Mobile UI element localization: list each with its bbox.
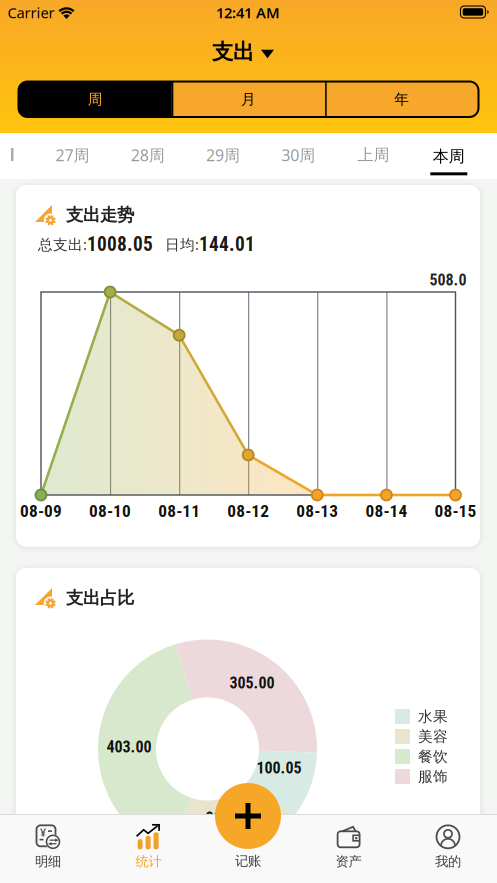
staticText: 29周: [206, 144, 240, 166]
button[interactable]: 资产: [336, 824, 362, 870]
staticText: 美容: [418, 727, 448, 745]
staticText: 305.00: [229, 674, 274, 692]
button[interactable]: 统计: [135, 824, 163, 870]
staticText: 餐饮: [418, 747, 448, 765]
staticText: 支出: [212, 39, 254, 65]
staticText: 服饰: [418, 767, 448, 785]
button[interactable]: 月: [172, 81, 325, 117]
button[interactable]: 记账: [235, 853, 261, 869]
staticText: 200.00: [205, 809, 250, 827]
staticText: 08-15: [434, 501, 476, 521]
staticText: 08-12: [227, 501, 269, 521]
staticText: 1008.05: [87, 233, 153, 256]
button[interactable]: 30周: [281, 144, 315, 166]
staticText: 28周: [131, 144, 165, 166]
staticText: 100.05: [256, 759, 301, 777]
staticText: 08-13: [296, 501, 338, 521]
staticText: 08-09: [20, 501, 62, 521]
staticText: 08-10: [89, 501, 131, 521]
staticText: 上周: [358, 145, 390, 165]
button[interactable]: ¥: [35, 824, 61, 870]
staticText: 我的: [435, 853, 461, 870]
staticText: Carrier: [7, 3, 54, 22]
staticText: 月: [241, 90, 256, 108]
button[interactable]: 上周: [358, 145, 390, 165]
button[interactable]: 记一笔: [215, 783, 281, 849]
button[interactable]: 29周: [206, 144, 240, 166]
staticText: 明细: [35, 853, 61, 870]
staticText: 508.0: [429, 271, 466, 289]
staticText: 本周: [433, 147, 465, 166]
button[interactable]: 本周: [430, 147, 467, 175]
staticText: 144.01: [199, 233, 255, 256]
staticText: 周: [88, 90, 103, 108]
button[interactable]: 我的: [435, 824, 461, 870]
staticText: 08-14: [365, 501, 407, 521]
staticText: 30周: [281, 144, 315, 166]
staticText: 支出占比: [66, 587, 134, 609]
button[interactable]: 27周: [55, 144, 89, 166]
button[interactable]: 年: [325, 81, 478, 117]
staticText: 403.00: [106, 738, 151, 756]
staticText: 资产: [336, 853, 362, 870]
staticText: ¥: [40, 825, 46, 839]
staticText: 年: [394, 90, 409, 108]
staticText: 水果: [418, 707, 448, 725]
staticText: 日均:: [153, 235, 199, 254]
button[interactable]: 周: [18, 81, 172, 117]
staticText: 支出走势: [66, 204, 134, 226]
staticText: 统计: [136, 853, 162, 870]
button[interactable]: 支出: [212, 39, 274, 65]
staticText: 记账: [235, 853, 261, 869]
staticText: 08-11: [158, 501, 200, 521]
staticText: 27周: [55, 144, 89, 166]
button[interactable]: 28周: [131, 144, 165, 166]
staticText: 12:41 AM: [216, 3, 280, 22]
staticText: 总支出:: [38, 235, 87, 254]
